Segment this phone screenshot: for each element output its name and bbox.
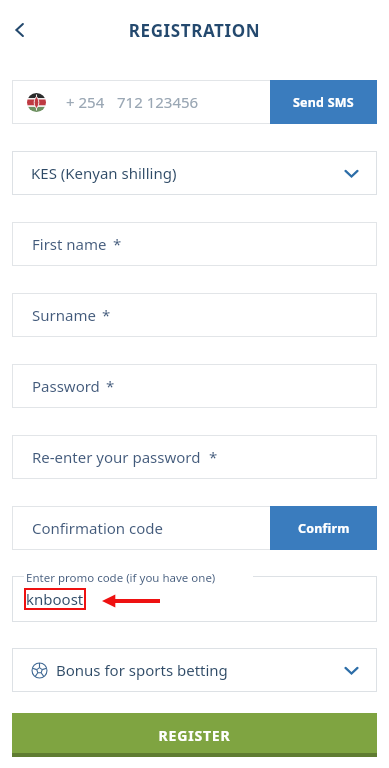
button[interactable]: Send SMS xyxy=(270,80,377,124)
staticText: + 254 xyxy=(66,92,105,112)
staticText: 712 123456 xyxy=(117,92,199,112)
button[interactable]: + 254 xyxy=(12,80,270,124)
staticText: Bonus for sports betting xyxy=(56,660,228,680)
staticText: * xyxy=(102,305,111,325)
staticText: Send SMS xyxy=(293,94,354,111)
staticText: Confirm xyxy=(298,520,350,537)
button[interactable]: Back xyxy=(2,12,38,48)
staticText: Re-enter your password xyxy=(32,447,201,467)
staticText: * xyxy=(113,234,122,254)
staticText: Password xyxy=(32,376,100,396)
staticText: REGISTER xyxy=(12,726,377,745)
staticText: knboost xyxy=(26,589,84,609)
staticText: REGISTRATION xyxy=(0,19,389,42)
staticText: Surname xyxy=(32,305,96,325)
button[interactable]: Confirm xyxy=(270,506,377,550)
staticText: * xyxy=(106,376,115,396)
button[interactable]: Confirmation code xyxy=(12,506,270,550)
staticText: KES (Kenyan shilling) xyxy=(31,163,177,183)
staticText: Enter promo code (if you have one) xyxy=(26,570,216,586)
button[interactable]: KES (Kenyan shilling) xyxy=(12,151,377,195)
staticText: * xyxy=(209,447,218,467)
button[interactable]: Enter promo code (if you have one) xyxy=(12,576,377,622)
button[interactable]: Re-enter your password xyxy=(12,435,377,479)
button[interactable]: REGISTER xyxy=(12,713,377,757)
button[interactable]: Password xyxy=(12,364,377,408)
button[interactable]: First name xyxy=(12,222,377,266)
button[interactable]: Surname xyxy=(12,293,377,337)
staticText: Confirmation code xyxy=(32,518,163,538)
button[interactable]: Bonus for sports betting xyxy=(12,648,377,692)
staticText: First name xyxy=(32,234,107,254)
